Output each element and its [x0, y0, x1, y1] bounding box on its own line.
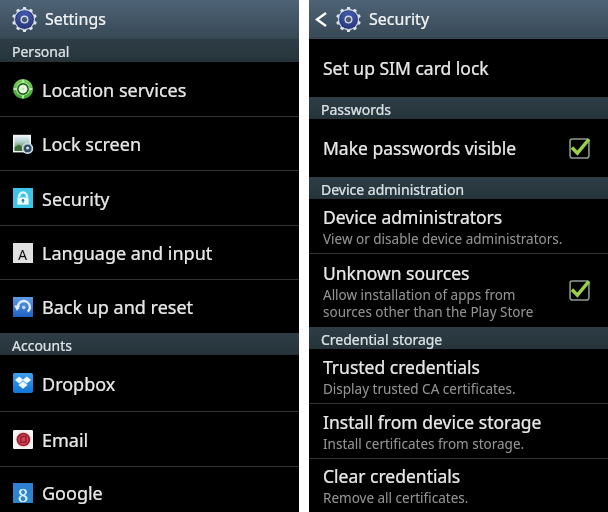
- button[interactable]: Unknown sources: [309, 254, 608, 327]
- button[interactable]: Location services: [0, 62, 299, 116]
- button[interactable]: Device administrators: [309, 199, 608, 253]
- staticText: Clear credentials: [323, 464, 461, 488]
- staticText: Settings: [45, 8, 106, 30]
- staticText: A: [18, 245, 28, 264]
- staticText: Location services: [42, 78, 187, 103]
- button[interactable]: Set up SIM card lock: [309, 39, 608, 97]
- staticText: Device administration: [321, 180, 465, 199]
- button[interactable]: A: [0, 226, 299, 279]
- staticText: Install from device storage: [323, 410, 542, 434]
- staticText: Google: [42, 481, 103, 506]
- button[interactable]: Navigate up: [309, 0, 333, 39]
- staticText: View or disable device administrators.: [323, 230, 563, 248]
- staticText: Lock screen: [42, 132, 142, 157]
- staticText: Allow installation of apps from sources …: [323, 286, 534, 321]
- button[interactable]: Security: [0, 171, 299, 225]
- staticText: Credential storage: [321, 330, 443, 349]
- staticText: Set up SIM card lock: [323, 56, 489, 80]
- staticText: Make passwords visible: [323, 136, 517, 160]
- staticText: Language and input: [42, 241, 213, 266]
- staticText: Personal: [12, 42, 70, 61]
- staticText: Device administrators: [323, 205, 503, 229]
- button[interactable]: Install from device storage: [309, 404, 608, 458]
- button[interactable]: Email: [0, 412, 299, 466]
- button[interactable]: 8: [0, 467, 299, 512]
- staticText: Unknown sources: [323, 261, 470, 285]
- button[interactable]: Trusted credentials: [309, 349, 608, 403]
- button[interactable]: Lock screen: [0, 117, 299, 170]
- staticText: Install certificates from storage.: [323, 435, 525, 453]
- staticText: Email: [42, 428, 89, 453]
- staticText: Security: [42, 187, 110, 212]
- staticText: Display trusted CA certificates.: [323, 380, 516, 398]
- staticText: Security: [369, 8, 430, 30]
- staticText: Trusted credentials: [323, 355, 480, 379]
- staticText: Remove all certificates.: [323, 489, 469, 507]
- button[interactable]: Back up and reset: [0, 280, 299, 333]
- staticText: Back up and reset: [42, 295, 194, 320]
- button[interactable]: Dropbox: [0, 355, 299, 411]
- button[interactable]: Clear credentials: [309, 459, 608, 512]
- staticText: 8: [18, 483, 29, 503]
- staticText: Accounts: [12, 336, 72, 355]
- button[interactable]: Make passwords visible: [309, 119, 608, 177]
- staticText: Dropbox: [42, 372, 116, 397]
- staticText: Passwords: [321, 100, 392, 119]
